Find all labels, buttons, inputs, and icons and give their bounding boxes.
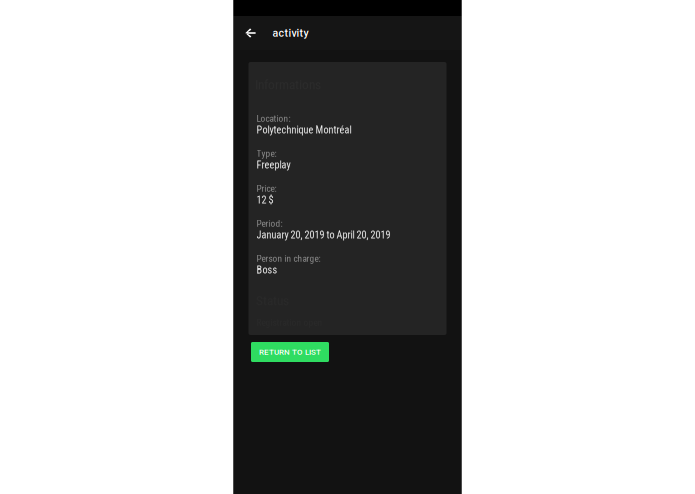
staticText: RETURN TO LIST: [259, 347, 321, 357]
staticText: Polytechnique Montréal: [256, 124, 351, 136]
staticText: Type:: [256, 148, 276, 159]
staticText: Boss: [256, 264, 277, 276]
staticText: Location:: [256, 113, 290, 124]
staticText: Freeplay: [256, 159, 290, 171]
staticText: activity: [272, 27, 308, 39]
button[interactable]: RETURN TO LIST: [251, 342, 329, 362]
staticText: January 20, 2019 to April 20, 2019: [256, 229, 390, 241]
staticText: 12 $: [256, 194, 273, 206]
staticText: Price:: [256, 183, 276, 194]
staticText: Period:: [256, 218, 282, 229]
button[interactable]: Back: [237, 16, 263, 50]
staticText: Person in charge:: [256, 253, 320, 264]
